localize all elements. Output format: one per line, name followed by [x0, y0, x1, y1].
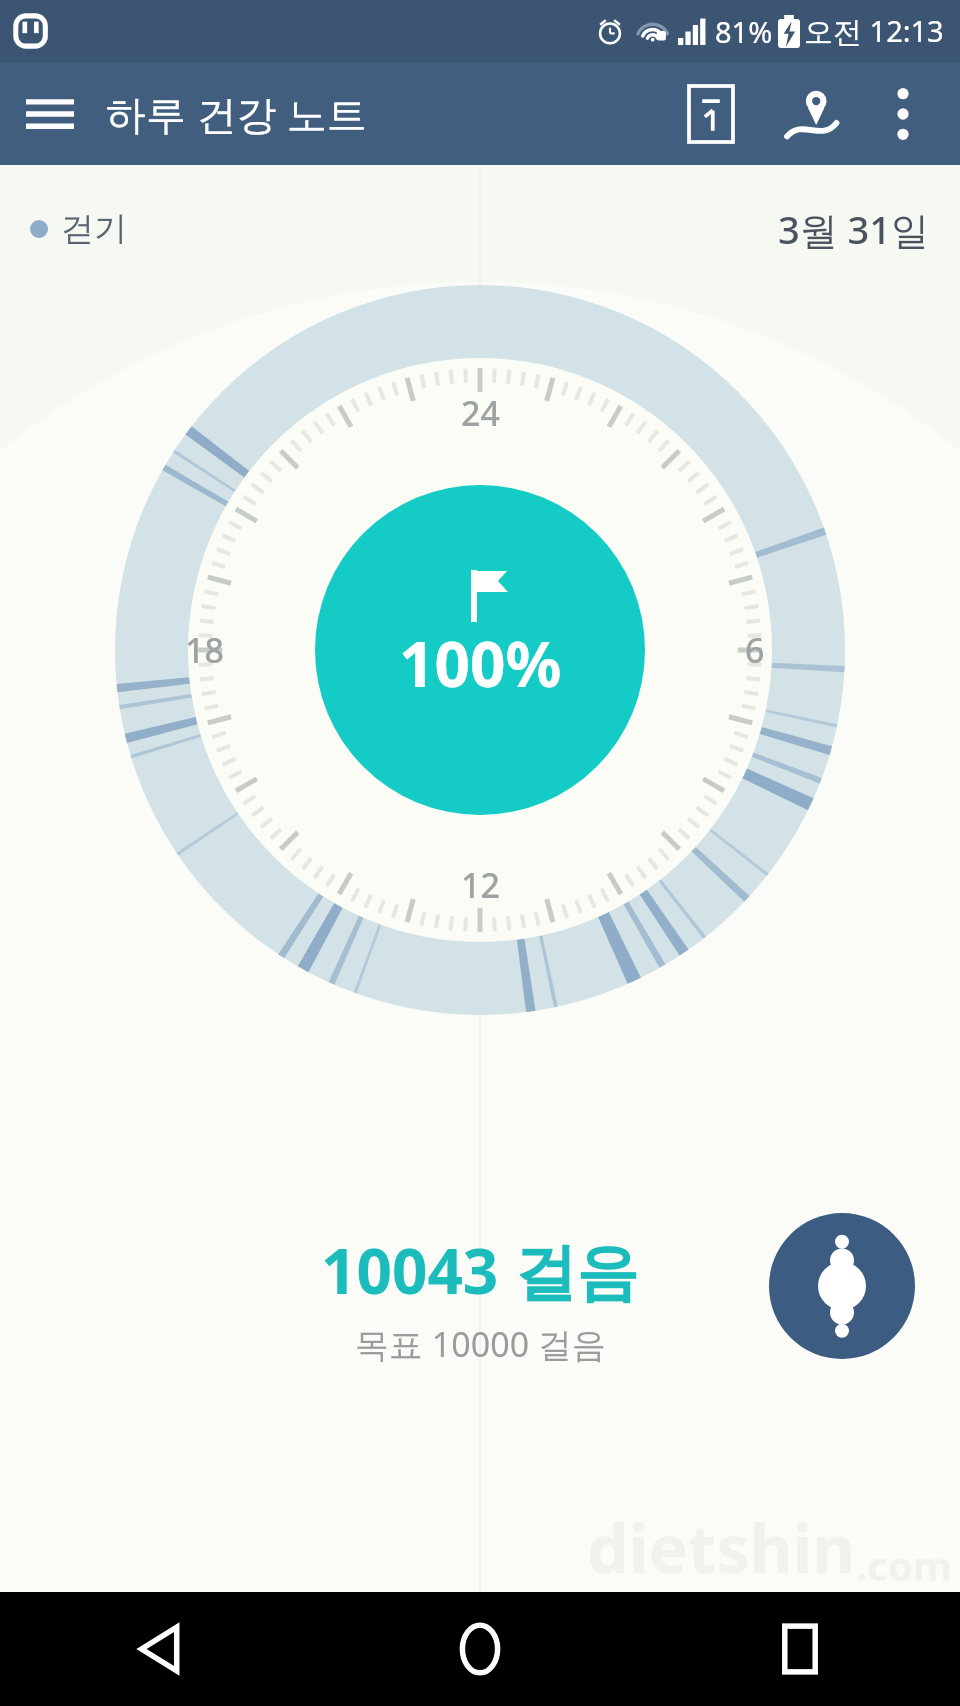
button[interactable]: 걷기 — [30, 208, 127, 250]
button[interactable]: Home — [320, 1592, 640, 1706]
staticText: 걷기 — [61, 208, 127, 250]
button[interactable]: Daily activity dial, 100 percent of goal — [0, 270, 960, 1030]
staticText: 6 — [745, 627, 765, 673]
button[interactable]: Recent apps — [640, 1592, 960, 1706]
staticText: 100% — [399, 621, 562, 705]
button[interactable]: 10043 걸음 — [321, 1228, 639, 1313]
staticText: 목표 10000 걸음 — [355, 1321, 606, 1367]
staticText: 오전 12:13 — [804, 11, 944, 51]
staticText: 하루 건강 노트 — [106, 86, 367, 141]
staticText: 18 — [185, 627, 224, 673]
staticText: dietshin — [587, 1502, 856, 1592]
button[interactable]: Back — [0, 1592, 320, 1706]
button[interactable]: 3월 31일 — [778, 203, 930, 255]
button[interactable]: Select date — [668, 71, 754, 157]
button[interactable]: Add health record — [769, 1213, 915, 1359]
staticText: 81% — [715, 12, 773, 51]
staticText: .com — [856, 1538, 952, 1592]
button[interactable]: More options — [860, 71, 946, 157]
staticText: 12 — [461, 862, 500, 908]
staticText: 24 — [461, 390, 500, 436]
button[interactable]: Route tracking — [768, 71, 854, 157]
button[interactable]: Open navigation drawer — [14, 78, 86, 150]
